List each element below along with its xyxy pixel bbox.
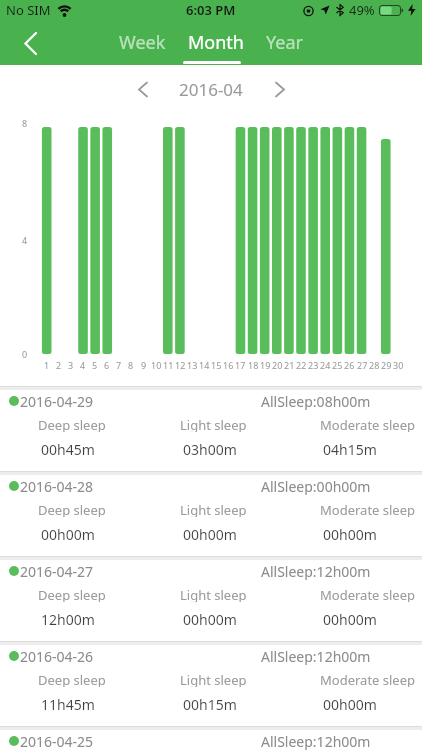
staticText: Deep sleep: [38, 501, 106, 517]
staticText: 00h15m: [183, 695, 237, 712]
staticText: 19: [260, 359, 271, 371]
staticText: AllSleep:12h00m: [261, 732, 371, 750]
staticText: 24: [320, 359, 331, 371]
staticText: 9: [141, 359, 147, 371]
staticText: Moderate sleep: [320, 586, 416, 602]
button[interactable]: Year: [266, 30, 303, 55]
staticText: 8: [128, 359, 134, 371]
staticText: AllSleep:00h00m: [261, 477, 371, 495]
staticText: 28: [369, 359, 380, 371]
staticText: 23: [308, 359, 319, 371]
staticText: 7: [116, 359, 122, 371]
staticText: 21: [284, 359, 295, 371]
staticText: 2016-04-28: [20, 477, 94, 495]
staticText: 4: [80, 359, 86, 371]
staticText: Deep sleep: [38, 416, 106, 432]
staticText: 2016-04-29: [20, 392, 94, 410]
staticText: Light sleep: [180, 586, 247, 602]
staticText: 30: [393, 359, 404, 371]
staticText: 2016-04-27: [20, 562, 94, 580]
button[interactable]: 2016-04-25: [0, 726, 422, 750]
staticText: 25: [332, 359, 343, 371]
staticText: Moderate sleep: [320, 416, 416, 432]
staticText: 3: [68, 359, 74, 371]
staticText: 29: [381, 359, 392, 371]
staticText: AllSleep:12h00m: [261, 647, 371, 665]
staticText: AllSleep:12h00m: [261, 562, 371, 580]
staticText: 8: [22, 117, 28, 129]
staticText: 10: [151, 359, 162, 371]
button[interactable]: [14, 27, 46, 59]
staticText: 13: [187, 359, 198, 371]
staticText: 11h45m: [41, 695, 95, 712]
staticText: No SIM: [6, 1, 51, 19]
button[interactable]: Month: [188, 30, 244, 55]
staticText: 4: [22, 234, 28, 246]
staticText: 16: [223, 359, 234, 371]
staticText: 20: [272, 359, 283, 371]
staticText: 49%: [349, 1, 375, 19]
staticText: 22: [296, 359, 307, 371]
staticText: 6: [104, 359, 110, 371]
staticText: 00h00m: [323, 525, 377, 542]
staticText: Light sleep: [180, 416, 247, 432]
staticText: 2016-04: [179, 78, 243, 101]
staticText: 14: [199, 359, 210, 371]
button[interactable]: [127, 74, 157, 104]
staticText: 18: [248, 359, 259, 371]
staticText: 00h45m: [41, 440, 95, 457]
staticText: 0: [22, 348, 28, 360]
staticText: 5: [92, 359, 98, 371]
staticText: 04h15m: [323, 440, 377, 457]
button[interactable]: 2016-04-26: [0, 641, 422, 726]
button[interactable]: 2016-04-29: [0, 386, 422, 471]
staticText: 26: [344, 359, 355, 371]
staticText: 2016-04-26: [20, 647, 94, 665]
button[interactable]: 2016-04-28: [0, 471, 422, 556]
staticText: 00h00m: [323, 695, 377, 712]
staticText: 00h00m: [323, 610, 377, 627]
button[interactable]: 2016-04-27: [0, 556, 422, 641]
staticText: 2016-04-25: [20, 732, 94, 750]
staticText: AllSleep:08h00m: [261, 392, 371, 410]
staticText: 27: [357, 359, 368, 371]
staticText: 03h00m: [183, 440, 237, 457]
button[interactable]: [265, 74, 295, 104]
staticText: 12: [175, 359, 186, 371]
staticText: Deep sleep: [38, 586, 106, 602]
staticText: 15: [211, 359, 222, 371]
staticText: Moderate sleep: [320, 501, 416, 517]
staticText: Deep sleep: [38, 671, 106, 687]
staticText: Light sleep: [180, 501, 247, 517]
staticText: 00h00m: [183, 525, 237, 542]
staticText: Light sleep: [180, 671, 247, 687]
staticText: Moderate sleep: [320, 671, 416, 687]
staticText: 17: [235, 359, 246, 371]
staticText: 2: [56, 359, 62, 371]
staticText: 1: [44, 359, 50, 371]
staticText: 11: [163, 359, 174, 371]
staticText: 12h00m: [41, 610, 95, 627]
staticText: 6:03 PM: [186, 1, 236, 19]
button[interactable]: Week: [119, 30, 166, 55]
staticText: 00h00m: [183, 610, 237, 627]
staticText: 00h00m: [41, 525, 95, 542]
